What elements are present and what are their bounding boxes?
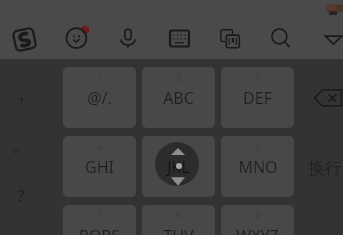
staticText: WXYZ xyxy=(236,225,279,235)
button[interactable]: Hide keyboard xyxy=(316,22,343,56)
button[interactable]: JKL xyxy=(142,136,215,197)
staticText: JKL xyxy=(167,156,190,178)
staticText: TUV xyxy=(163,225,194,235)
button[interactable]: WXYZ xyxy=(221,205,294,235)
button[interactable]: MNO xyxy=(221,136,294,197)
staticText: ? xyxy=(17,184,25,207)
button[interactable]: Cursor pad xyxy=(155,142,199,186)
button[interactable]: Search xyxy=(264,21,298,55)
staticText: 5 xyxy=(176,140,182,152)
staticText: 换行 xyxy=(308,158,342,179)
button[interactable]: TUV xyxy=(142,205,215,235)
button[interactable]: Delete xyxy=(297,67,343,128)
staticText: DEF xyxy=(243,87,272,109)
button[interactable]: Voice input xyxy=(111,21,145,55)
button[interactable]: Clipboard xyxy=(213,21,247,55)
button[interactable]: PQRS xyxy=(63,205,136,235)
staticText: ABC xyxy=(163,87,194,109)
staticText: @/. xyxy=(87,87,112,109)
staticText: MNO xyxy=(238,156,278,178)
staticText: 4 xyxy=(97,140,103,152)
staticText: GHI xyxy=(85,156,114,178)
button[interactable]: 换行 xyxy=(297,136,343,197)
button[interactable]: ABC xyxy=(142,67,215,128)
button[interactable]: Emoji xyxy=(61,21,95,55)
button[interactable]: DEF xyxy=(221,67,294,128)
button[interactable]: GHI xyxy=(63,136,136,197)
button[interactable]: @/. xyxy=(63,67,136,128)
button[interactable]: Sogou menu xyxy=(7,22,41,56)
staticText: PQRS xyxy=(79,225,120,235)
button[interactable]: Keyboard layout xyxy=(162,21,196,55)
